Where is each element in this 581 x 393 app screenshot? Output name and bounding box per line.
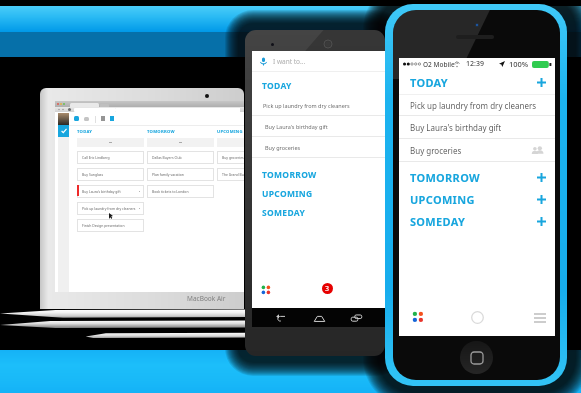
staticText: SOMEDAY xyxy=(410,214,466,229)
staticText: 3 xyxy=(325,284,330,294)
button[interactable]: Pick up laundry from dry cleaners xyxy=(252,95,385,115)
button[interactable]: Buy Sunglass xyxy=(78,169,143,180)
button[interactable]: Add task xyxy=(77,138,144,147)
button[interactable]: Buy Laura's birthday gift xyxy=(399,116,555,138)
button[interactable]: Notifications xyxy=(322,283,333,294)
button[interactable]: SOMEDAY xyxy=(252,203,385,222)
button[interactable]: Add task xyxy=(147,138,214,147)
staticText: Buy groceries xyxy=(265,144,301,151)
button[interactable]: Home xyxy=(311,310,327,326)
button[interactable]: Buy Laura's birthday gift xyxy=(78,186,143,197)
staticText: Buy groceries for Friday xyxy=(222,155,244,160)
staticText: Dallas Buyers Club xyxy=(152,155,182,160)
button[interactable]: Finish Design presentation xyxy=(78,220,143,231)
staticText: TOMORROW xyxy=(410,170,480,185)
button[interactable]: Buy Laura's birthday gift xyxy=(252,116,385,136)
button[interactable]: Book tickets to London xyxy=(148,186,213,197)
staticText: UPCOMING xyxy=(410,192,475,207)
button[interactable]: UPCOMING xyxy=(252,184,385,203)
button[interactable]: Dallas Buyers Club xyxy=(148,152,213,163)
button[interactable]: Back xyxy=(273,310,289,326)
staticText: Buy groceries xyxy=(410,145,462,156)
button[interactable]: SOMEDAY xyxy=(399,210,555,232)
button[interactable]: Add task xyxy=(471,311,484,324)
button[interactable]: TODAY xyxy=(252,76,385,95)
staticText: Call Eric Lindberg xyxy=(82,155,110,160)
staticText: TODAY xyxy=(77,129,93,135)
button[interactable]: Apps xyxy=(261,285,271,295)
staticText: Finish Design presentation xyxy=(82,223,125,228)
staticText: 12:39 xyxy=(466,59,484,69)
staticText: TOMORROW xyxy=(147,129,175,135)
button[interactable]: Call Eric Lindberg xyxy=(78,152,143,163)
staticText: UPCOMING xyxy=(217,129,243,135)
button[interactable]: Apps xyxy=(412,311,424,323)
staticText: The Grand Budapest Hotel xyxy=(222,172,244,177)
staticText: SOMEDAY xyxy=(262,207,306,219)
staticText: Book tickets to London xyxy=(152,189,189,194)
button[interactable]: New task xyxy=(74,116,79,121)
staticText: Plan family vacation xyxy=(152,172,184,177)
button[interactable]: Pick up laundry from dry cleaners xyxy=(78,203,143,214)
button[interactable]: Menu xyxy=(533,311,546,324)
button[interactable]: UPCOMING xyxy=(399,188,555,210)
button[interactable]: Recents xyxy=(348,310,364,326)
button[interactable]: Plan family vacation xyxy=(148,169,213,180)
button[interactable]: Buy groceries for Friday xyxy=(218,152,244,163)
button[interactable]: TODAY xyxy=(399,70,555,94)
staticText: UPCOMING xyxy=(262,188,313,200)
button[interactable]: TOMORROW xyxy=(252,165,385,184)
button[interactable]: I want to... xyxy=(252,51,385,71)
staticText: Pick up laundry from dry cleaners xyxy=(410,100,537,111)
staticText: Buy Laura's birthday gift xyxy=(82,189,121,194)
button[interactable]: Pick up laundry from dry cleaners xyxy=(399,95,555,115)
staticText: TODAY xyxy=(410,75,448,90)
button[interactable]: Tasks xyxy=(58,125,69,137)
staticText: Buy Laura's birthday gift xyxy=(410,122,502,133)
staticText: Pick up laundry from dry cleaners xyxy=(263,102,350,109)
staticText: TOMORROW xyxy=(262,169,317,181)
button[interactable]: The Grand Budapest Hotel xyxy=(218,169,244,180)
button[interactable]: Buy groceries xyxy=(252,137,385,157)
staticText: O2 Mobile xyxy=(423,60,455,69)
staticText: Buy Sunglass xyxy=(82,172,104,177)
staticText: MacBook Air xyxy=(187,294,226,303)
button[interactable]: Buy groceries xyxy=(399,139,555,161)
button[interactable]: TOMORROW xyxy=(399,166,555,188)
staticText: TODAY xyxy=(262,80,292,92)
staticText: 100% xyxy=(509,59,529,69)
staticText: Pick up laundry from dry cleaners xyxy=(82,206,136,211)
staticText: Buy Laura's birthday gift xyxy=(265,123,328,130)
staticText: I want to... xyxy=(273,57,306,66)
button[interactable]: Notes xyxy=(84,117,89,121)
